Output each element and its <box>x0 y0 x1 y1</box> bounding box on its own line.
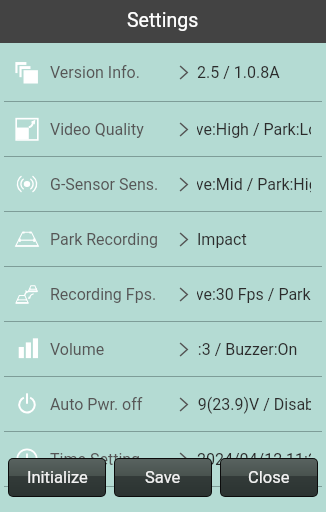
staticText: Initialize <box>27 468 88 487</box>
button[interactable]: Save <box>115 459 211 496</box>
button[interactable]: Volume <box>0 322 326 377</box>
staticText: Recording Fps. <box>50 285 157 304</box>
other: Open Time Setting <box>179 453 188 466</box>
staticText: Drive:Mid / Park:High <box>197 175 290 194</box>
button[interactable]: Auto Pwr. off <box>0 377 326 432</box>
button[interactable]: Park Recording <box>0 212 326 267</box>
other: Open Auto Pwr. off <box>179 398 188 411</box>
other: Open Recording Fps. <box>179 288 188 301</box>
staticText: Impact <box>197 230 247 249</box>
other: Open G-Sensor Sens. <box>179 178 188 191</box>
staticText: Close <box>248 468 290 487</box>
button[interactable]: Version Info. <box>0 43 326 102</box>
button[interactable]: Recording Fps. <box>0 267 326 322</box>
staticText: Auto Pwr. off <box>50 395 143 414</box>
button[interactable]: Initialize <box>9 459 105 496</box>
other: Open Version Info. <box>179 66 188 79</box>
staticText: Video Quality <box>50 120 144 139</box>
staticText: G-Sensor Sens. <box>50 175 159 194</box>
staticText: Volume <box>50 340 105 359</box>
staticText: Version Info. <box>50 63 140 82</box>
button[interactable]: Time Setting <box>0 432 326 487</box>
staticText: Park Recording <box>50 230 159 249</box>
staticText: Bat:19(23.9)V / Disable <box>197 395 275 414</box>
staticText: Vol:3 / Buzzer:On <box>197 340 289 359</box>
staticText: Drive:High / Park:Low <box>197 120 290 139</box>
other: Open Video Quality <box>179 123 188 136</box>
staticText: 2024/04/12 11:23 <box>197 450 311 469</box>
button[interactable]: G-Sensor Sens. <box>0 157 326 212</box>
staticText: Settings <box>127 9 199 32</box>
other: Open Volume <box>179 343 188 356</box>
other: Open Park Recording <box>179 233 188 246</box>
button[interactable]: Video Quality <box>0 102 326 157</box>
staticText: Time Setting <box>50 450 141 469</box>
staticText: 2.5 / 1.0.8A <box>197 63 280 82</box>
staticText: Save <box>145 468 181 487</box>
button[interactable]: Close <box>221 459 317 496</box>
staticText: Drive:30 Fps / Park:15 <box>197 285 290 304</box>
